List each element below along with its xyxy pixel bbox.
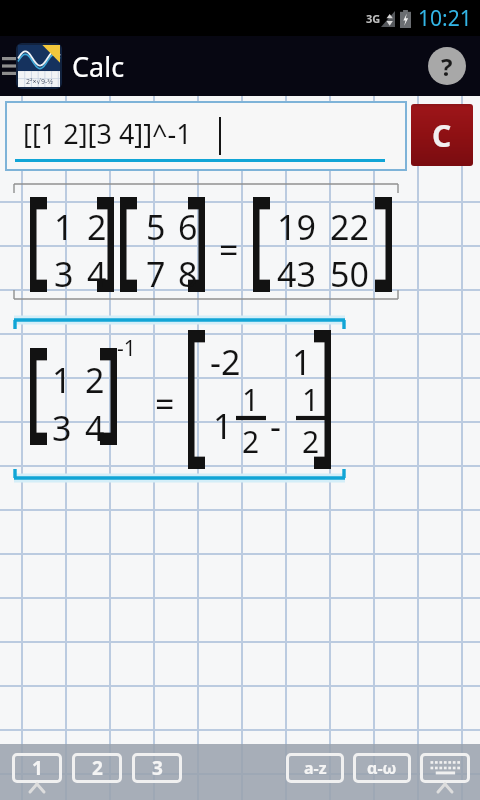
staticText: 1 xyxy=(54,204,74,250)
staticText: 22 xyxy=(330,204,369,250)
staticText: - xyxy=(270,403,281,449)
staticText: 19 xyxy=(277,204,316,250)
button[interactable]: a-z xyxy=(286,753,344,783)
staticText: -2 xyxy=(210,339,241,385)
staticText: 3 xyxy=(54,251,74,297)
staticText: 7 xyxy=(146,251,166,297)
staticText: 1 xyxy=(52,357,72,403)
staticText: 6 xyxy=(178,204,198,250)
staticText: 1 xyxy=(302,379,320,420)
staticText: 3G xyxy=(366,11,381,26)
staticText: 8 xyxy=(178,251,198,297)
staticText: 1 xyxy=(242,379,260,420)
staticText: Calc xyxy=(72,48,125,85)
button[interactable]: C xyxy=(411,104,473,166)
staticText: 2 xyxy=(87,204,107,250)
button[interactable]: Calc app icon xyxy=(16,43,62,89)
button[interactable]: Help xyxy=(426,45,468,87)
staticText: α-ω xyxy=(367,757,397,779)
staticText: ? xyxy=(441,50,453,83)
button[interactable]: 1 xyxy=(12,753,62,783)
button[interactable]: Menu xyxy=(0,44,18,88)
button[interactable]: 3 xyxy=(132,753,182,783)
staticText: 10:21 xyxy=(418,4,472,33)
button[interactable]: [[1 2][3 4]]^-1 xyxy=(7,103,405,169)
staticText: = xyxy=(219,227,239,273)
staticText: 2²×√9-3⁄2 xyxy=(26,77,53,87)
button[interactable]: Keyboard xyxy=(420,753,470,783)
staticText: 2 xyxy=(85,357,105,403)
staticText: 2 xyxy=(302,421,320,462)
staticText: 4 xyxy=(85,405,105,451)
staticText: 3 xyxy=(52,405,72,451)
staticText: a-z xyxy=(304,757,327,779)
staticText: 1 xyxy=(292,339,312,385)
staticText: [[1 2][3 4]]^-1 xyxy=(23,115,192,152)
staticText: 1 xyxy=(32,755,43,781)
staticText: = xyxy=(155,381,175,427)
staticText: 43 xyxy=(277,251,316,297)
button[interactable]: α-ω xyxy=(353,753,411,783)
staticText: 2 xyxy=(242,421,260,462)
staticText: 5 xyxy=(146,204,166,250)
button[interactable]: 2 xyxy=(72,753,122,783)
staticText: C xyxy=(432,115,452,156)
staticText: 50 xyxy=(330,251,369,297)
staticText: 3 xyxy=(152,755,163,781)
staticText: -1 xyxy=(117,334,136,363)
staticText: 4 xyxy=(87,251,107,297)
staticText: 1 xyxy=(213,403,233,449)
staticText: 2 xyxy=(92,755,103,781)
